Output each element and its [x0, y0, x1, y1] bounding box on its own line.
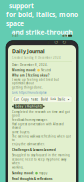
- staticText: getting things done.: [12, 86, 43, 89]
- staticText: and strike-through: [11, 28, 72, 37]
- button[interactable]: Paste: [30, 97, 39, 101]
- staticText: ⋮: [68, 39, 73, 45]
- staticText: ▸: [68, 98, 69, 101]
- staticText: some buyers.: [12, 130, 30, 134]
- button[interactable]: Bold: [40, 97, 49, 101]
- staticText: Completed the research on time and got g…: [12, 110, 70, 117]
- staticText: Cut: [14, 98, 19, 101]
- staticText: Daily Journal: [12, 48, 45, 55]
- staticText: feedback from my manager.: [12, 118, 48, 122]
- button[interactable]: Undo: [52, 38, 60, 46]
- staticText: Bold: [41, 98, 48, 101]
- staticText: Happy: [39, 171, 47, 175]
- staticText: Date: December 8, 2024.: [12, 63, 48, 67]
- staticText: enjoy the calm weather.: [12, 143, 45, 146]
- staticText: Neutral: [41, 68, 51, 72]
- staticText: Created Sunday, 8 December 2024: [12, 56, 61, 59]
- staticText: Final thoughts & reflections: [12, 177, 52, 181]
- button[interactable]: More formatting: [66, 97, 70, 102]
- staticText: ←: [12, 39, 16, 45]
- button[interactable]: Save: [44, 38, 52, 46]
- staticText: Morning mood:: [12, 68, 36, 72]
- staticText: for bold, italics, mono space: [6, 10, 78, 28]
- button[interactable]: Link: [50, 97, 56, 101]
- staticText: Why am I feeling okay?: [12, 74, 49, 77]
- staticText: Link: https://m.notes/plan: [12, 91, 47, 94]
- staticText: ↺: [54, 39, 58, 45]
- button[interactable]: Cut: [13, 97, 20, 101]
- button[interactable]: Back: [10, 38, 18, 46]
- staticText: 9:41: [12, 34, 19, 37]
- button[interactable]: More options: [68, 38, 74, 46]
- staticText: Challenges & Lessons Learned: [12, 148, 56, 152]
- staticText: working.: [12, 166, 24, 169]
- staticText: Copy: [21, 98, 28, 101]
- staticText: I woke up feeling a bit tired but optimi…: [12, 78, 59, 85]
- staticText: Today's Highlights: [15, 105, 42, 108]
- staticText: Paste: [31, 98, 39, 101]
- staticText: The evening walk was refreshing when got…: [12, 135, 71, 142]
- staticText: Link: [50, 98, 55, 101]
- button[interactable]: Copy: [20, 97, 29, 101]
- staticText: ↓: [46, 39, 50, 45]
- staticText: sessions; need to keep my phone away whe…: [12, 158, 66, 165]
- button[interactable]: Redo: [60, 38, 68, 46]
- staticText: Sunday mood:: [12, 171, 34, 175]
- staticText: Italic: [58, 98, 65, 101]
- button[interactable]: Italic: [57, 97, 66, 101]
- staticText: Rich text notes with support: [9, 0, 75, 10]
- staticText: Struggled to stay focused in the morning: [12, 153, 70, 157]
- staticText: ↻: [62, 39, 66, 45]
- staticText: Had a great conversation with Alex and s…: [12, 122, 64, 129]
